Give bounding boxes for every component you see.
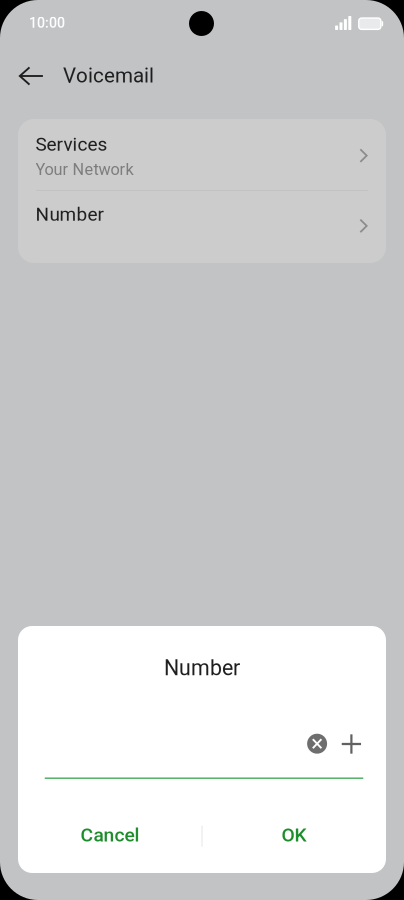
button[interactable]: Back <box>7 52 55 100</box>
staticText: Number <box>164 655 240 680</box>
button[interactable]: OK <box>202 809 385 861</box>
staticText: Cancel <box>80 824 139 846</box>
staticText: Voicemail <box>63 63 154 88</box>
staticText: OK <box>281 824 306 846</box>
button[interactable]: Number <box>18 191 386 263</box>
button[interactable]: Add from contacts <box>338 731 364 757</box>
staticText: Number <box>35 203 103 225</box>
staticText: Services <box>35 133 107 155</box>
staticText: Your Network <box>35 160 133 179</box>
button[interactable]: Clear <box>304 731 330 757</box>
staticText: 10:00 <box>29 14 65 31</box>
button[interactable]: Cancel <box>18 809 201 861</box>
button[interactable]: Services <box>18 119 386 190</box>
